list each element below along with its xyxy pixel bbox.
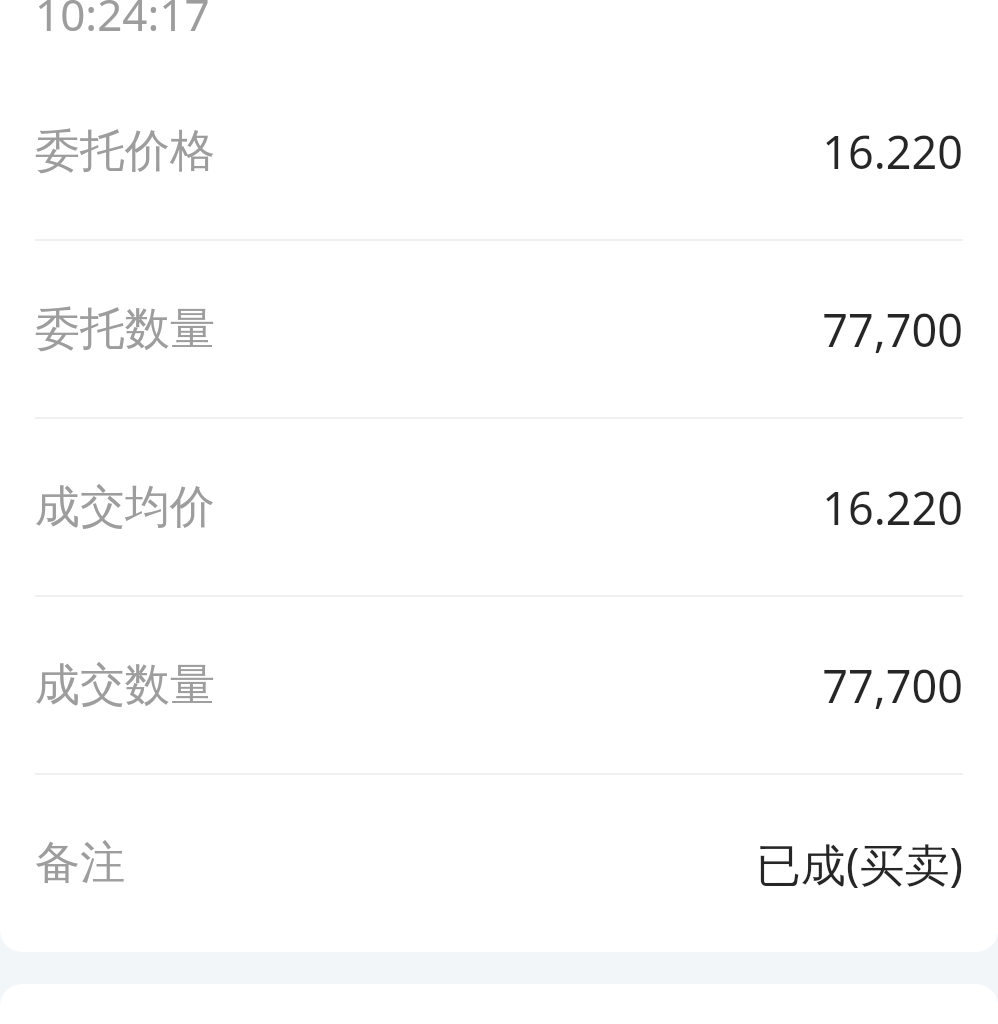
staticText: 委托价格 (35, 123, 215, 180)
button[interactable]: 委托价格 (0, 63, 998, 239)
staticText: 委托数量 (35, 301, 215, 358)
staticText: 16.220 (822, 477, 963, 538)
button[interactable]: 委托数量 (0, 241, 998, 417)
staticText: 备注 (35, 835, 125, 892)
button[interactable]: 成交数量 (0, 597, 998, 773)
button[interactable]: 成交均价 (0, 419, 998, 595)
staticText: 77,700 (822, 299, 963, 360)
staticText: 成交数量 (35, 657, 215, 714)
staticText: 16.220 (822, 121, 963, 182)
button[interactable]: 备注 (0, 775, 998, 951)
staticText: 10:24:17 (35, 0, 210, 44)
staticText: 成交均价 (35, 479, 215, 536)
staticText: 77,700 (822, 655, 963, 716)
staticText: 已成(买卖) (755, 833, 963, 894)
